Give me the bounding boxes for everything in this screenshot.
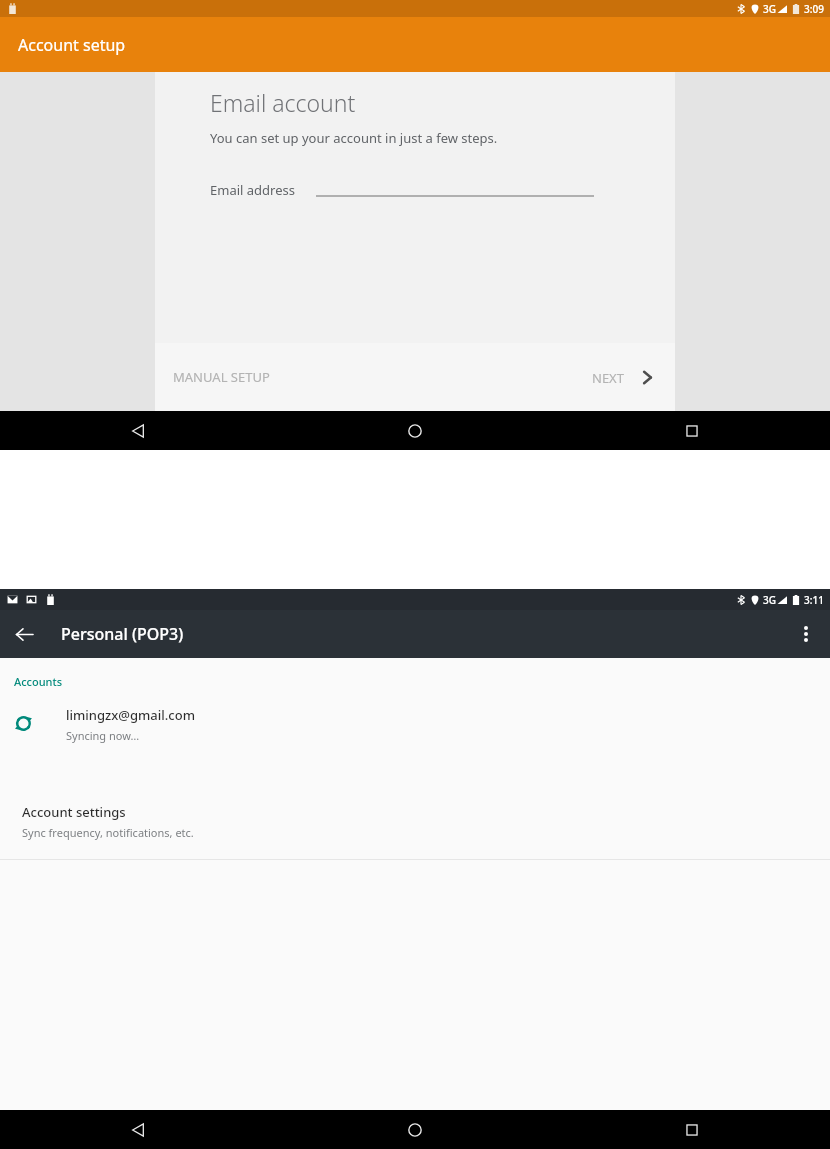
staticText: Personal (POP3)	[61, 623, 184, 645]
staticText: Accounts	[14, 674, 63, 689]
button[interactable]: NEXT	[582, 360, 667, 395]
staticText: MANUAL SETUP	[173, 368, 270, 386]
staticText: Email address	[210, 181, 295, 199]
staticText: 3:11	[804, 593, 824, 607]
staticText: You can set up your account in just a fe…	[210, 129, 498, 147]
staticText: NEXT	[592, 369, 624, 387]
staticText: 3G	[763, 2, 776, 16]
button[interactable]: Back	[0, 1110, 276, 1149]
button[interactable]: MANUAL SETUP	[159, 358, 284, 396]
staticText: limingzx@gmail.com	[66, 706, 195, 724]
button[interactable]: Back	[0, 411, 276, 450]
staticText: Sync frequency, notifications, etc.	[22, 825, 194, 840]
staticText: Email account	[210, 87, 356, 118]
button[interactable]	[316, 183, 594, 197]
button[interactable]: limingzx@gmail.com	[0, 704, 830, 753]
button[interactable]: Account settings	[0, 801, 830, 852]
button[interactable]: More options	[782, 610, 830, 658]
button[interactable]: Recent apps	[553, 1110, 830, 1149]
button[interactable]: Recent apps	[553, 411, 830, 450]
staticText: Account setup	[18, 34, 126, 56]
button[interactable]: Account setup	[0, 17, 830, 72]
staticText: 3G	[763, 593, 776, 607]
staticText: Account settings	[22, 803, 126, 821]
button[interactable]: Home	[276, 1110, 553, 1149]
staticText: 3:09	[804, 2, 824, 16]
staticText: Syncing now…	[66, 728, 140, 743]
button[interactable]: Home	[276, 411, 553, 450]
button[interactable]: Navigate up	[0, 610, 48, 658]
